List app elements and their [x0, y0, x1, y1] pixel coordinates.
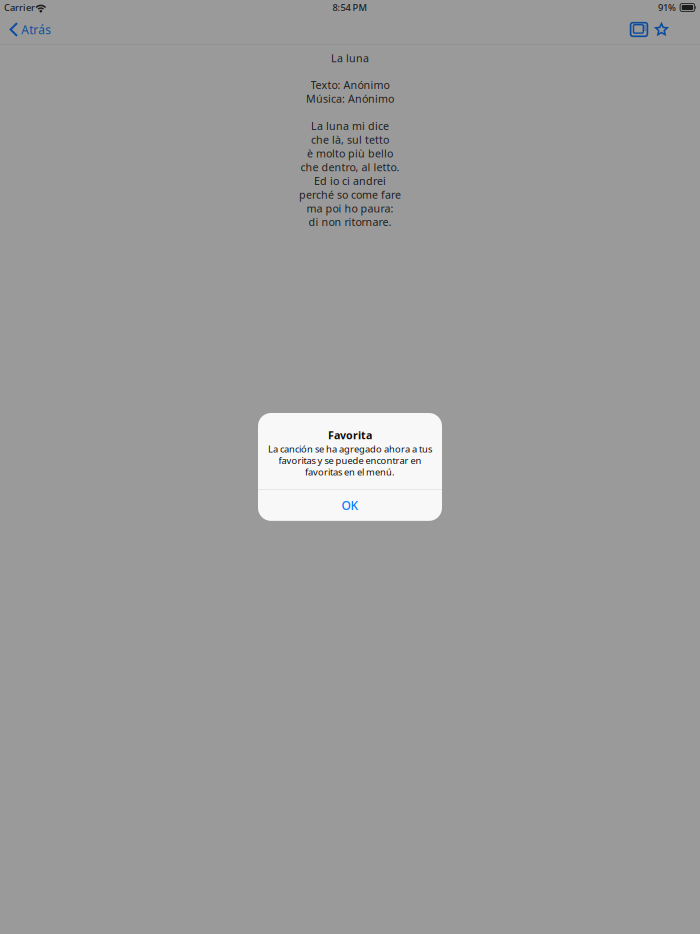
button[interactable]: Present — [628, 15, 650, 44]
staticText: 8:54 PM — [332, 1, 367, 14]
staticText: Texto: Anónimo — [310, 78, 389, 92]
staticText: OK — [341, 497, 358, 513]
staticText: ma poi ho paura: — [306, 201, 393, 215]
staticText: che là, sul tetto — [311, 133, 389, 147]
staticText: 91% — [658, 1, 676, 14]
button[interactable]: Atrás — [0, 15, 59, 44]
staticText: Carrier — [4, 1, 35, 14]
staticText: è molto più bello — [307, 146, 393, 160]
staticText: che dentro, al letto. — [300, 160, 399, 174]
staticText: Música: Anónimo — [306, 92, 394, 106]
staticText: favoritas y se puede encontrar en — [278, 454, 421, 467]
staticText: di non ritornare. — [308, 215, 391, 229]
staticText: Favorita — [328, 428, 372, 442]
staticText: Atrás — [21, 21, 51, 37]
staticText: perché so come fare — [299, 187, 401, 202]
staticText: Ed io ci andrei — [314, 174, 386, 188]
staticText: La luna — [331, 51, 369, 65]
button[interactable]: OK — [258, 490, 442, 521]
staticText: La luna mi dice — [311, 119, 389, 133]
button[interactable]: Add to favourites — [650, 15, 673, 44]
staticText: favoritas en el menú. — [305, 466, 395, 478]
staticText: La canción se ha agregado ahora a tus — [268, 443, 432, 455]
